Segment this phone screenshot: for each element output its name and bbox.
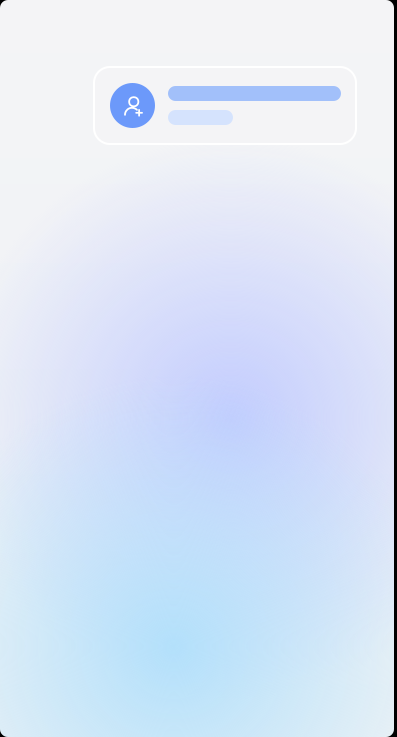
- button[interactable]: Add contact: [94, 67, 356, 144]
